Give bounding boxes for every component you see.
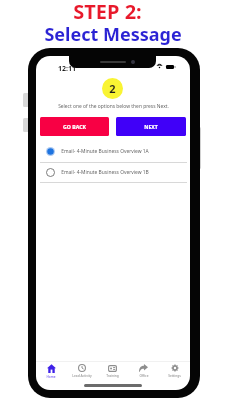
staticText: Select one of the options below then pre…	[58, 103, 169, 110]
button[interactable]: NEXT	[116, 117, 186, 136]
button[interactable]: Settings	[159, 360, 190, 382]
staticText: 2	[109, 81, 116, 96]
staticText: NEXT	[144, 123, 158, 130]
staticText: STEP 2:	[73, 0, 142, 25]
button[interactable]: Email- 4-Minute Business Overview 1A	[36, 141, 190, 161]
button[interactable]: Training	[97, 360, 128, 382]
staticText: Email- 4-Minute Business Overview 1B	[61, 169, 149, 176]
staticText: GO BACK	[63, 123, 86, 130]
staticText: Settings	[168, 374, 181, 378]
button[interactable]: Home	[36, 360, 66, 382]
staticText: Training	[106, 374, 119, 378]
button[interactable]: Email- 4-Minute Business Overview 1B	[36, 162, 190, 182]
staticText: Home	[46, 375, 56, 379]
staticText: 12:11	[58, 64, 76, 74]
staticText: Office	[139, 374, 149, 378]
staticText: Select Message	[44, 22, 182, 47]
button[interactable]: GO BACK	[40, 117, 109, 136]
staticText: Email- 4-Minute Business Overview 1A	[61, 148, 149, 155]
button[interactable]: Lead Activity	[66, 360, 97, 382]
button[interactable]: Office	[128, 360, 159, 382]
staticText: Lead Activity	[72, 374, 92, 378]
